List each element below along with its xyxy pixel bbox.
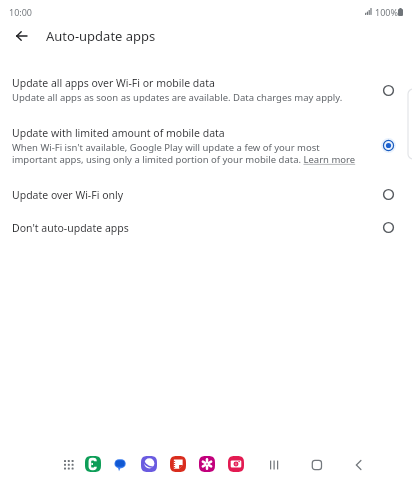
button[interactable]: Update over Wi-Fi only [0, 182, 412, 214]
staticText: 100% [375, 6, 398, 18]
button[interactable]: Update with limited amount of mobile dat… [0, 120, 412, 180]
button[interactable]: Back [345, 451, 373, 479]
button[interactable]: Home [303, 451, 331, 479]
button[interactable]: Messages [109, 453, 131, 475]
button[interactable]: Camera [225, 453, 247, 475]
staticText: Update with limited amount of mobile dat… [12, 126, 225, 140]
button[interactable]: Galaxy Store [196, 453, 218, 475]
button[interactable]: Recents [261, 451, 289, 479]
staticText: Update all apps as soon as updates are a… [12, 91, 343, 104]
button[interactable]: Phone [82, 453, 104, 475]
button[interactable]: Don't auto-update apps [0, 215, 412, 247]
button[interactable]: Update all apps over Wi-Fi or mobile dat… [0, 70, 412, 118]
button[interactable]: Back [5, 20, 37, 52]
staticText: When Wi-Fi isn't available, Google Play … [12, 141, 357, 166]
button[interactable]: Internet [138, 453, 160, 475]
staticText: Update over Wi-Fi only [12, 188, 124, 202]
staticText: Don't auto-update apps [12, 221, 129, 235]
staticText: Auto-update apps [46, 27, 156, 45]
button[interactable]: Apps [58, 454, 79, 475]
staticText: 10:00 [9, 6, 33, 18]
button[interactable]: Notes [167, 453, 189, 475]
staticText: Update all apps over Wi-Fi or mobile dat… [12, 76, 215, 90]
